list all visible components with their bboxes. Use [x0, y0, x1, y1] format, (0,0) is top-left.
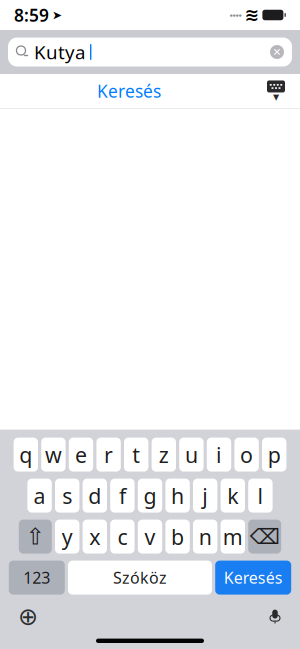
staticText: ⌫ — [250, 524, 280, 549]
button[interactable]: x — [83, 520, 107, 554]
staticText: d — [88, 481, 101, 510]
staticText: g — [143, 481, 156, 510]
staticText: b — [171, 522, 184, 551]
button[interactable]: g — [138, 479, 162, 513]
button[interactable]: e — [69, 438, 93, 472]
button[interactable]: b — [165, 520, 190, 554]
staticText: i — [216, 440, 222, 469]
staticText: Keresés — [97, 79, 161, 102]
staticText: u — [185, 440, 198, 469]
staticText: n — [199, 522, 212, 551]
button[interactable]: Keresés — [215, 561, 291, 595]
staticText: r — [104, 440, 113, 469]
staticText: q — [19, 440, 32, 469]
button[interactable]: o — [234, 438, 259, 472]
staticText: 8:59 — [14, 3, 49, 26]
button[interactable]: v — [138, 520, 162, 554]
button[interactable]: f — [110, 479, 135, 513]
staticText: ···· — [229, 7, 241, 23]
staticText: ✕ — [272, 46, 281, 58]
staticText: l — [257, 481, 263, 510]
button[interactable]: a — [27, 479, 52, 513]
button[interactable]: z — [152, 438, 176, 472]
staticText: k — [227, 481, 238, 510]
staticText: ⊕ — [18, 603, 38, 630]
staticText: y — [62, 522, 73, 551]
button[interactable]: Szóköz — [68, 561, 212, 595]
staticText: ▼ — [273, 92, 279, 102]
button[interactable]: 123 — [9, 561, 65, 595]
staticText: ≋ — [244, 5, 259, 25]
button[interactable]: y — [55, 520, 79, 554]
button[interactable]: p — [262, 438, 286, 472]
button[interactable]: k — [221, 479, 245, 513]
staticText: Keresés — [224, 567, 283, 588]
button[interactable]: Hide keyboard — [258, 76, 294, 105]
staticText: Szóköz — [113, 567, 167, 588]
button[interactable]: Delete — [248, 520, 281, 554]
staticText: v — [144, 522, 155, 551]
button[interactable]: s — [55, 479, 79, 513]
button[interactable]: Keresés — [85, 72, 173, 109]
staticText: p — [268, 440, 281, 469]
button[interactable]: r — [96, 438, 121, 472]
staticText: m — [223, 522, 243, 551]
button[interactable]: j — [193, 479, 217, 513]
button[interactable]: h — [165, 479, 190, 513]
staticText: 123 — [23, 567, 50, 588]
button[interactable]: Next keyboard — [10, 595, 46, 638]
button[interactable]: n — [193, 520, 217, 554]
button[interactable]: Dictate — [260, 600, 290, 634]
staticText: e — [75, 440, 87, 469]
staticText: s — [62, 481, 72, 510]
staticText: ➤ — [52, 8, 62, 22]
staticText: h — [171, 481, 184, 510]
button[interactable]: d — [83, 479, 107, 513]
button[interactable]: i — [207, 438, 231, 472]
staticText: x — [89, 522, 100, 551]
staticText: z — [159, 440, 169, 469]
staticText: j — [202, 481, 208, 510]
button[interactable]: q — [14, 438, 38, 472]
button[interactable]: u — [179, 438, 204, 472]
button[interactable]: w — [41, 438, 66, 472]
button[interactable]: t — [124, 438, 148, 472]
staticText: ⇧ — [26, 524, 45, 549]
button[interactable]: l — [248, 479, 273, 513]
button[interactable]: Clear text — [270, 45, 284, 59]
staticText: Kutya — [34, 40, 85, 64]
staticText: f — [119, 481, 126, 510]
button[interactable]: Kutya — [0, 30, 300, 74]
staticText: c — [117, 522, 127, 551]
staticText: a — [34, 481, 46, 510]
staticText: t — [132, 440, 140, 469]
staticText: o — [240, 440, 253, 469]
staticText: w — [45, 440, 62, 469]
button[interactable]: Shift — [19, 520, 52, 554]
button[interactable]: c — [110, 520, 135, 554]
button[interactable]: m — [221, 520, 245, 554]
